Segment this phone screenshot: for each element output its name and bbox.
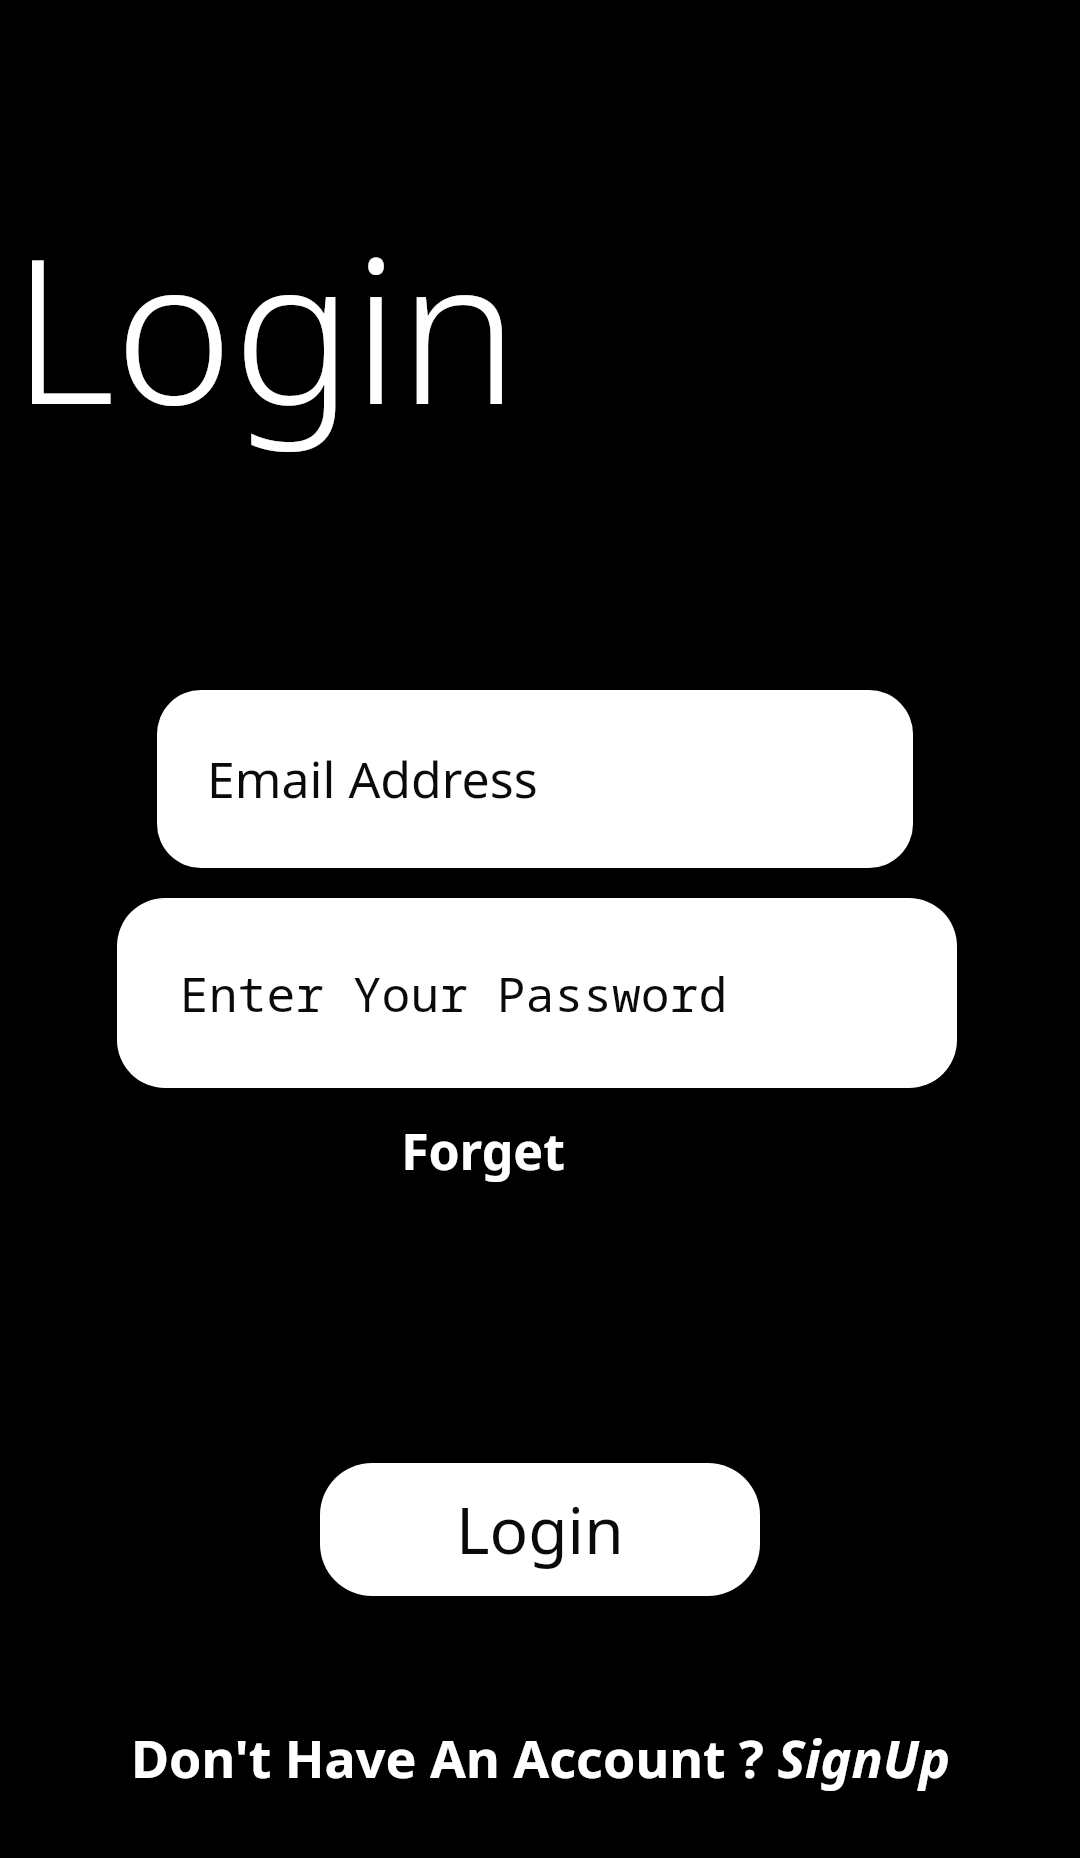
staticText: Login	[12, 190, 519, 462]
button[interactable]: Email Address	[157, 690, 913, 868]
staticText: Enter Your Password	[180, 961, 728, 1026]
button[interactable]: Forget Password ?	[300, 1117, 666, 1185]
staticText: Don't Have An Account ? SignUp	[131, 1722, 950, 1793]
staticText: Forget Password ?	[300, 1117, 666, 1185]
button[interactable]: Login	[320, 1463, 760, 1596]
staticText: Login	[456, 1486, 624, 1573]
button[interactable]: Don't Have An Account ? SignUp	[131, 1722, 950, 1793]
staticText: Email Address	[207, 745, 538, 813]
button[interactable]: Enter Your Password	[117, 898, 957, 1088]
